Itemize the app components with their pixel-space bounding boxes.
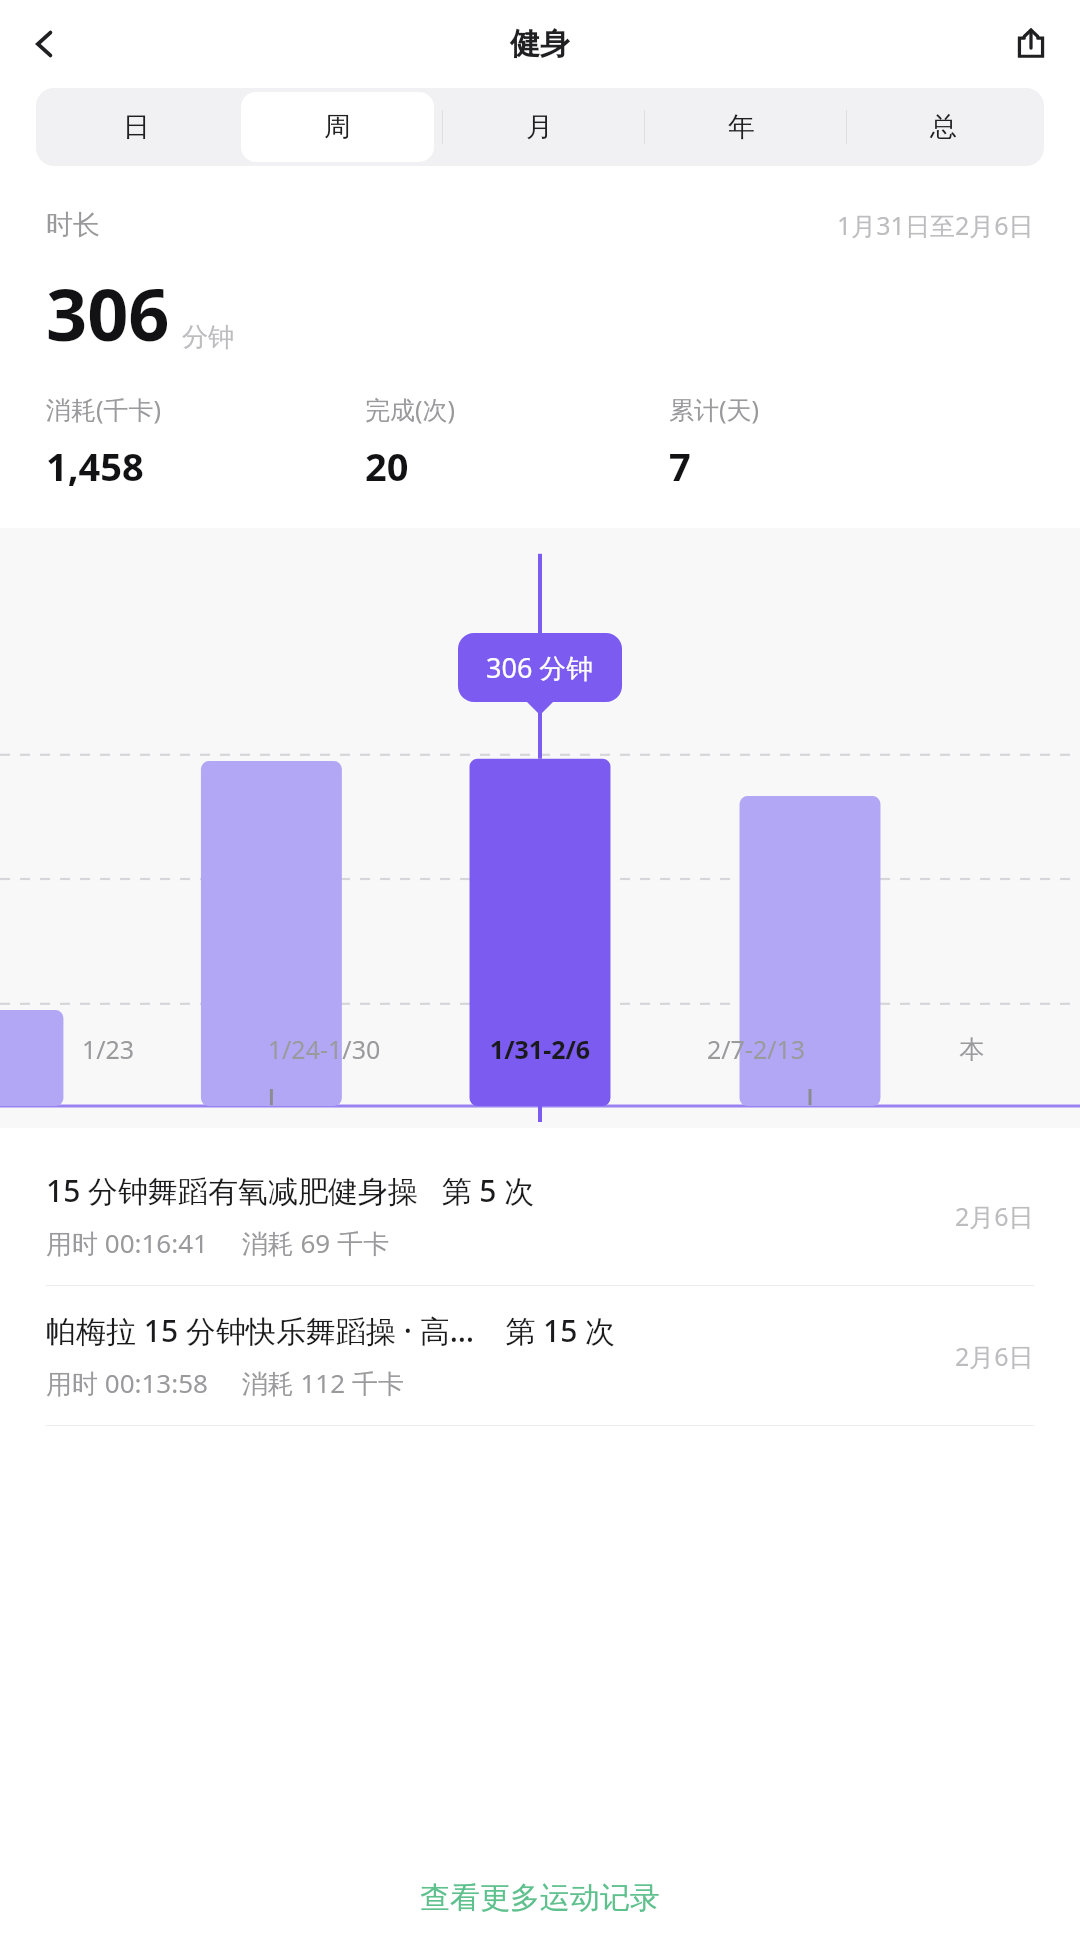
button[interactable]: 总 [846, 92, 1040, 162]
button[interactable]: 查看更多运动记录 [0, 1865, 1080, 1931]
staticText: 时长 [46, 208, 100, 242]
button[interactable]: 日 [40, 92, 233, 162]
staticText: 20 [365, 440, 409, 492]
staticText: 本 [864, 1034, 1080, 1065]
staticText: 健身 [510, 25, 570, 63]
staticText: 306 [46, 264, 170, 362]
staticText: 完成(次) [365, 392, 456, 426]
staticText: 帕梅拉 15 分钟快乐舞蹈操 · 高… 第 15 次 [46, 1310, 616, 1351]
button[interactable]: Back [14, 13, 76, 75]
button[interactable]: Share [1000, 13, 1062, 75]
staticText: 7 [669, 440, 691, 492]
staticText: 2月6日 [955, 1339, 1034, 1373]
staticText: 15 分钟舞蹈有氧减肥健身操 第 5 次 [46, 1170, 535, 1211]
button[interactable]: 15 分钟舞蹈有氧减肥健身操 第 5 次 [0, 1146, 1080, 1285]
button[interactable]: 帕梅拉 15 分钟快乐舞蹈操 · 高… 第 15 次 [0, 1286, 1080, 1425]
button[interactable]: 月 [442, 92, 636, 162]
staticText: 2/7-2/13 [648, 1032, 864, 1066]
staticText: 用时 00:16:41 消耗 69 千卡 [46, 1225, 389, 1261]
staticText: 分钟 [182, 321, 234, 354]
staticText: 306 分钟 [486, 649, 594, 686]
staticText: 查看更多运动记录 [420, 1879, 660, 1917]
staticText: 1月31日至2月6日 [837, 208, 1034, 242]
button[interactable]: 周 [241, 92, 434, 162]
button[interactable]: 年 [644, 92, 838, 162]
staticText: 累计(天) [669, 392, 760, 426]
staticText: 1/31-2/6 [432, 1032, 648, 1066]
staticText: 1/23 [0, 1032, 216, 1066]
staticText: 月 [526, 110, 553, 144]
staticText: 总 [930, 110, 957, 144]
staticText: 日 [123, 110, 150, 144]
staticText: 用时 00:13:58 消耗 112 千卡 [46, 1365, 404, 1401]
staticText: 年 [728, 110, 755, 144]
staticText: 2月6日 [955, 1199, 1034, 1233]
staticText: 消耗(千卡) [46, 392, 162, 426]
staticText: 周 [324, 110, 351, 144]
staticText: 1/24-1/30 [216, 1032, 432, 1066]
staticText: 1,458 [46, 440, 144, 492]
